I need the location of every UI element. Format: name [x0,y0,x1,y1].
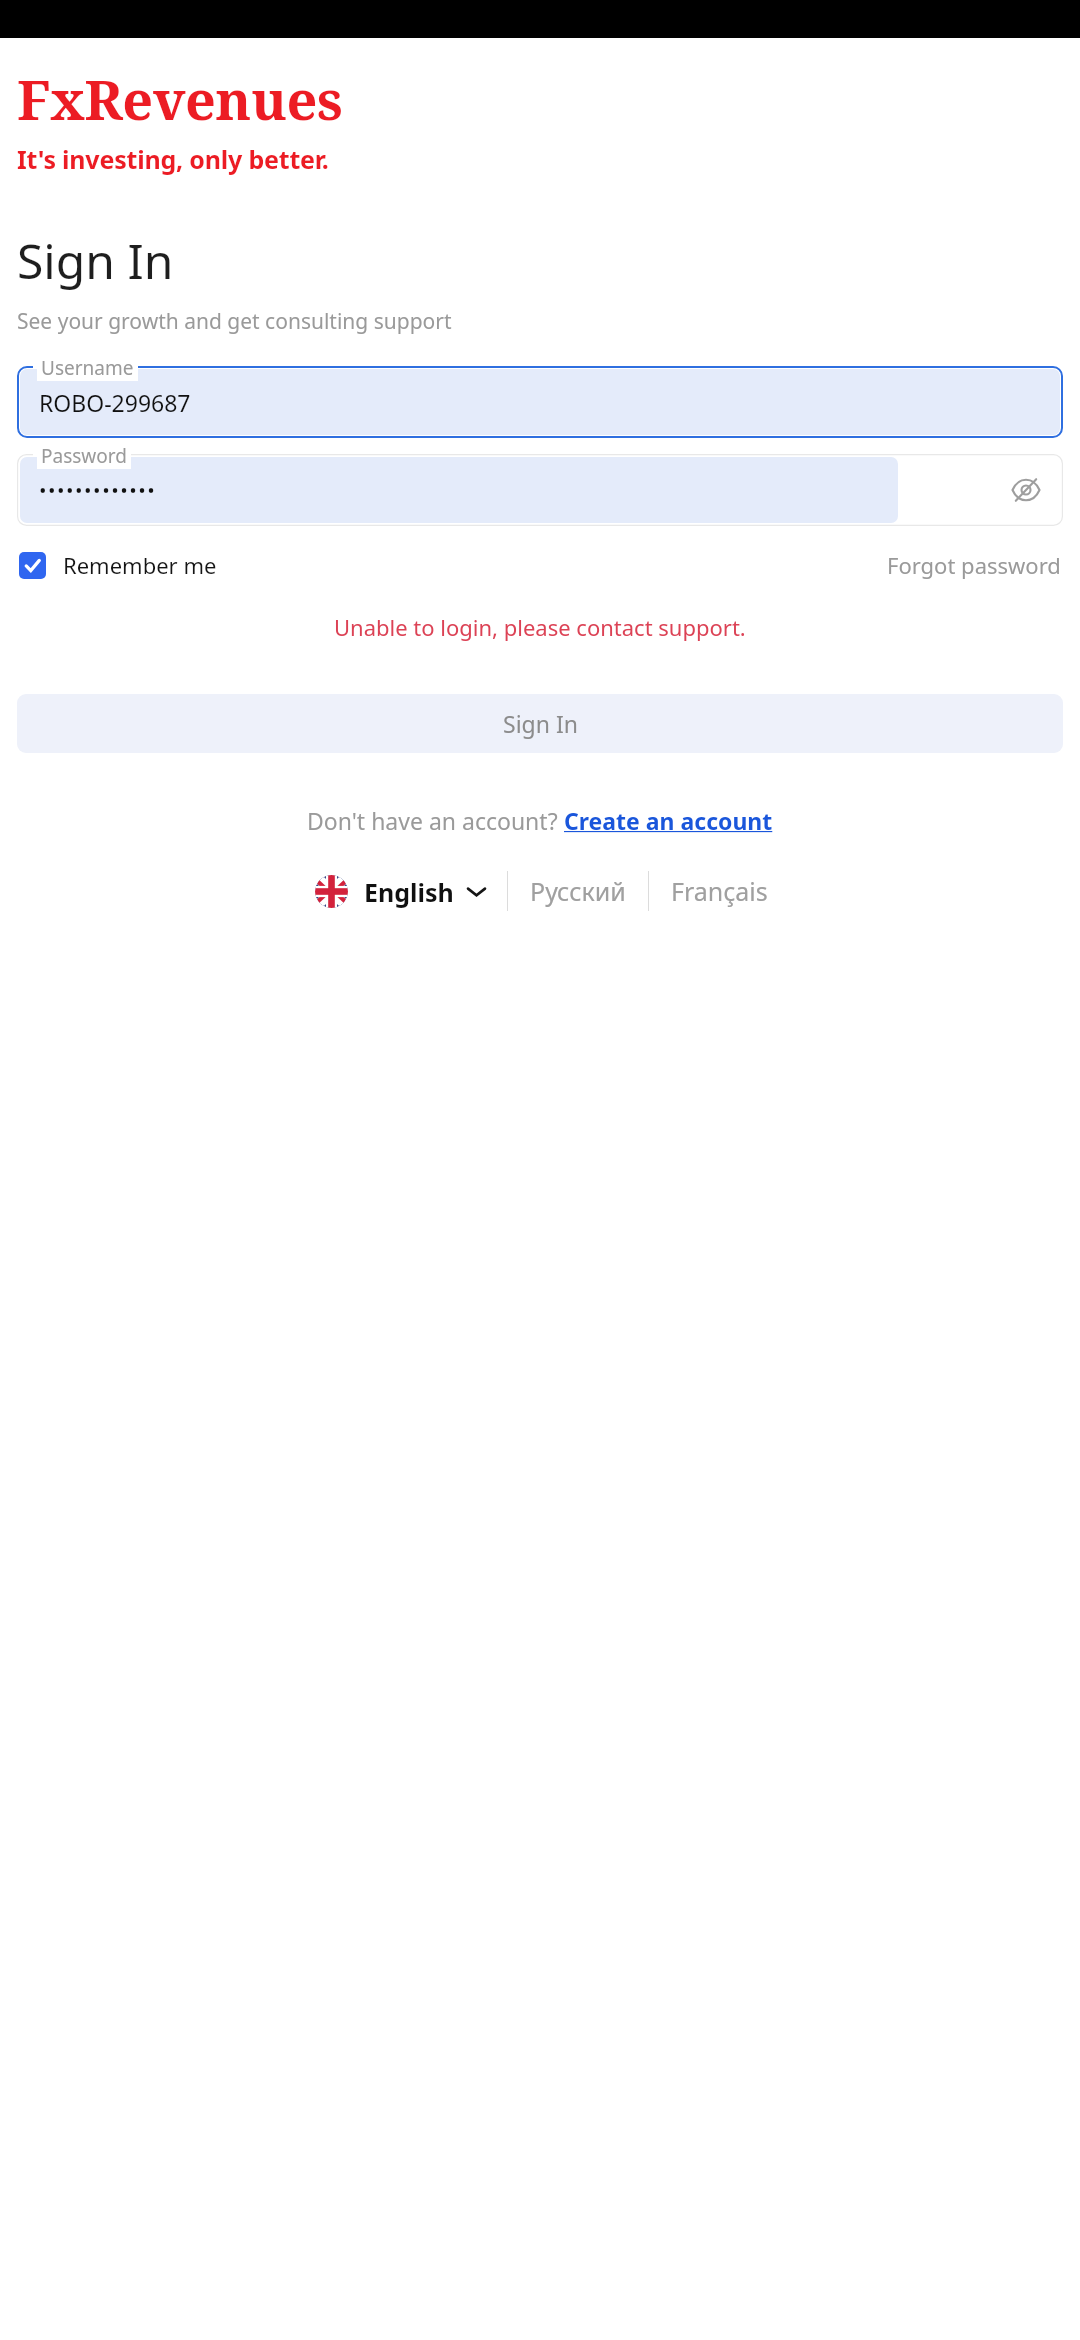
button[interactable]: Show password [1003,467,1049,513]
staticText: See your growth and get consulting suppo… [17,307,452,336]
staticText: Sign In [17,228,174,293]
button[interactable]: English [309,869,489,914]
staticText: English [364,875,454,909]
staticText: Password [41,443,127,469]
staticText: Username [41,355,134,381]
button[interactable]: Remember me [17,544,219,586]
staticText: ROBO-299687 [39,387,191,418]
button[interactable]: Français [667,868,772,914]
staticText: Unable to login, please contact support. [334,612,746,642]
button[interactable]: Create an account [564,805,773,836]
staticText: It's investing, only better. [17,142,329,176]
staticText: FxRevenues [17,62,343,136]
staticText: Sign In [503,708,578,739]
staticText: Remember me [63,550,217,580]
staticText: Русский [530,874,626,908]
button[interactable]: Русский [526,868,630,914]
button[interactable]: Sign In [17,694,1063,753]
staticText: Don't have an account? [307,805,564,836]
staticText: ••••••••••••• [39,477,157,504]
button[interactable]: Forgot password [885,544,1063,586]
staticText: Create an account [564,805,773,836]
staticText: Forgot password [887,550,1061,580]
staticText: Français [671,874,768,908]
